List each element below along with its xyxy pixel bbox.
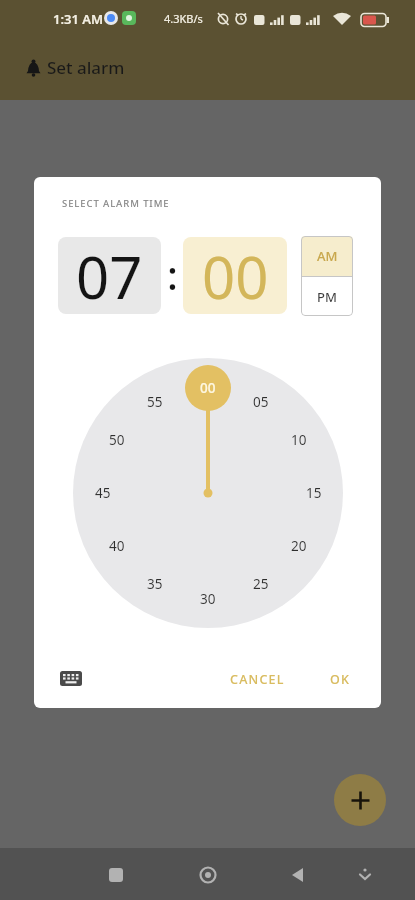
button[interactable]: AM (301, 236, 353, 276)
button[interactable]: 40 (97, 526, 137, 566)
staticText: 07 (76, 237, 143, 314)
staticText: CANCEL (230, 671, 285, 688)
button[interactable] (286, 863, 310, 887)
button[interactable]: PM (301, 277, 353, 316)
staticText: 35 (147, 575, 163, 593)
staticText: OK (330, 671, 351, 688)
button[interactable]: 45 (83, 473, 123, 513)
button[interactable]: 00 (183, 237, 287, 314)
button[interactable]: 20 (279, 526, 319, 566)
button[interactable]: 10 (279, 420, 319, 460)
staticText: 20 (291, 537, 307, 555)
staticText: AM (317, 247, 338, 265)
staticText: 25 (253, 575, 269, 593)
staticText: 40 (109, 537, 125, 555)
staticText: 00 (202, 237, 269, 314)
staticText: 05 (253, 393, 269, 411)
button[interactable]: 35 (135, 564, 175, 604)
button[interactable] (196, 863, 220, 887)
button[interactable]: CANCEL (212, 665, 302, 693)
staticText: 50 (109, 431, 125, 449)
button[interactable]: 55 (135, 382, 175, 422)
button[interactable] (57, 667, 85, 689)
staticText: : (167, 247, 178, 301)
staticText: 55 (147, 393, 163, 411)
staticText: 1:31 AM (53, 10, 104, 28)
button[interactable] (354, 863, 376, 885)
staticText: 15 (306, 484, 322, 502)
staticText: 10 (291, 431, 307, 449)
staticText: 4.3KB/s (164, 11, 203, 26)
button[interactable]: 30 (188, 579, 228, 619)
staticText: SELECT ALARM TIME (62, 197, 170, 210)
button[interactable] (104, 863, 128, 887)
button[interactable]: Set alarm (0, 36, 415, 100)
button[interactable]: 07 (58, 237, 161, 314)
staticText: 45 (95, 484, 111, 502)
staticText: Set alarm (47, 56, 125, 79)
button[interactable] (334, 774, 386, 826)
button[interactable]: OK (322, 665, 358, 693)
button[interactable]: 15 (294, 473, 334, 513)
button[interactable]: 50 (97, 420, 137, 460)
button[interactable]: 00 (185, 365, 231, 411)
button[interactable]: 05 (241, 382, 281, 422)
staticText: 00 (200, 379, 216, 397)
staticText: 30 (200, 590, 216, 608)
staticText: PM (317, 288, 337, 306)
button[interactable]: 25 (241, 564, 281, 604)
